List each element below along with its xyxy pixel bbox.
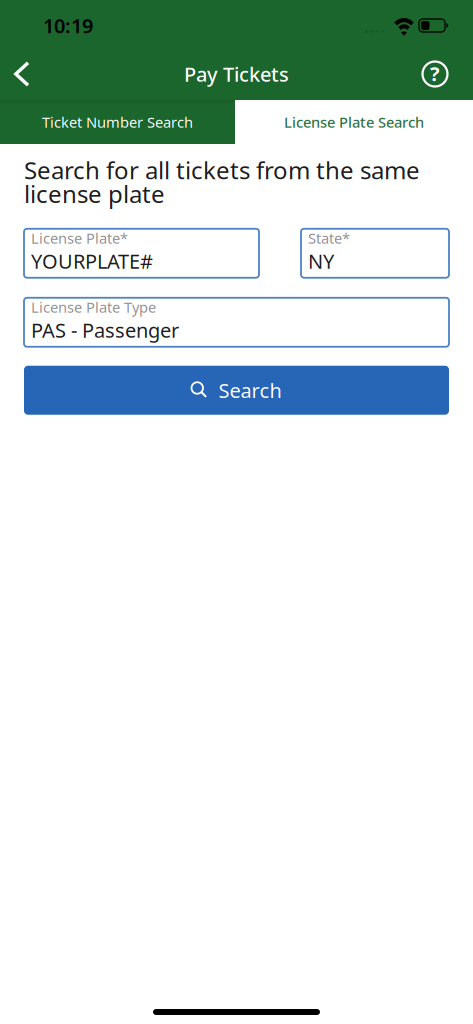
staticText: Ticket Number Search — [42, 112, 193, 132]
button[interactable]: Help — [413, 48, 457, 100]
staticText: YOURPLATE# — [31, 248, 153, 274]
staticText: License Plate Search — [284, 112, 424, 132]
staticText: NY — [308, 248, 334, 274]
staticText: State* — [308, 228, 350, 248]
staticText: Search — [218, 377, 281, 404]
button[interactable]: Search — [24, 366, 449, 415]
staticText: License Plate* — [31, 228, 128, 248]
button[interactable]: State* — [301, 229, 449, 278]
button[interactable]: License Plate* — [24, 229, 259, 278]
staticText: Search for all tickets from the same lic… — [24, 154, 420, 210]
button[interactable]: License Plate Type — [24, 298, 449, 347]
staticText: PAS - Passenger — [31, 317, 179, 343]
staticText: 10:19 — [43, 12, 93, 39]
button[interactable]: Back — [0, 48, 44, 100]
staticText: Pay Tickets — [184, 61, 289, 87]
button[interactable]: License Plate Search — [235, 100, 473, 144]
button[interactable]: Ticket Number Search — [0, 100, 235, 144]
staticText: License Plate Type — [31, 297, 156, 317]
staticText: ? — [430, 60, 440, 87]
